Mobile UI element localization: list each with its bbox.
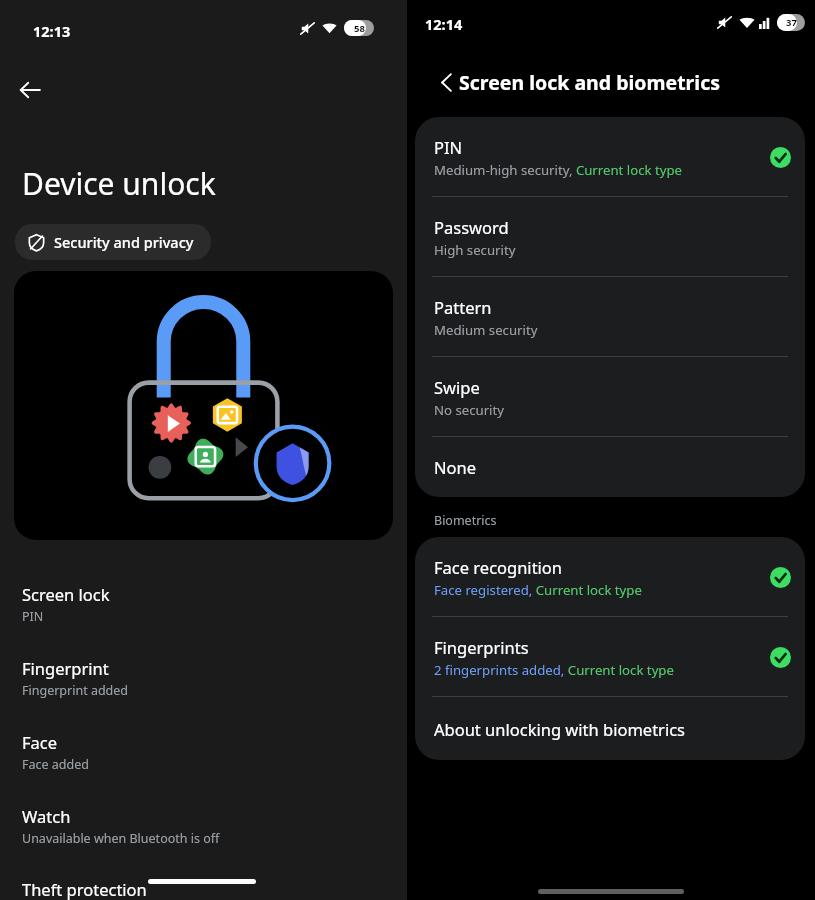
button[interactable]: About unlocking with biometrics — [415, 697, 805, 760]
button[interactable]: Face recognition — [415, 537, 805, 617]
button[interactable]: Fingerprints — [415, 617, 805, 697]
staticText: 58 — [354, 22, 365, 35]
staticText: Unavailable when Bluetooth is off — [22, 830, 220, 847]
button[interactable]: PIN — [415, 117, 805, 197]
staticText: 12:13 — [33, 21, 71, 41]
button[interactable]: Swipe — [415, 357, 805, 437]
staticText: Face — [22, 731, 58, 753]
staticText: PIN — [434, 136, 463, 158]
staticText: Fingerprints — [434, 636, 529, 658]
staticText: Biometrics — [434, 512, 497, 529]
staticText: 2 fingerprints added, Current lock type — [434, 661, 674, 679]
staticText: Fingerprint — [22, 657, 109, 679]
staticText: Fingerprint added — [22, 682, 129, 699]
button[interactable]: Fingerprint — [0, 652, 407, 705]
staticText: None — [434, 456, 477, 478]
staticText: Face recognition — [434, 556, 563, 578]
button[interactable]: Password — [415, 197, 805, 277]
staticText: No security — [434, 401, 504, 419]
button[interactable]: Security and privacy — [15, 224, 211, 260]
button[interactable]: Back — [8, 68, 52, 112]
staticText: Security and privacy — [54, 232, 194, 252]
staticText: Screen lock and biometrics — [459, 69, 720, 96]
staticText: Face registered, Current lock type — [434, 581, 642, 599]
button[interactable]: Theft protection — [0, 874, 407, 900]
button[interactable]: Screen lock — [0, 578, 407, 631]
button[interactable]: Back — [427, 62, 467, 102]
staticText: High security — [434, 241, 516, 259]
button[interactable]: Watch — [0, 800, 407, 853]
button[interactable] — [14, 271, 393, 540]
staticText: Swipe — [434, 376, 480, 398]
staticText: Theft protection — [22, 878, 147, 900]
staticText: 12:14 — [425, 14, 463, 34]
staticText: 37 — [786, 16, 797, 29]
staticText: Password — [434, 216, 509, 238]
button[interactable]: Face — [0, 726, 407, 779]
staticText: Device unlock — [22, 163, 216, 204]
staticText: PIN — [22, 608, 44, 625]
staticText: Pattern — [434, 296, 492, 318]
staticText: Screen lock — [22, 583, 110, 605]
staticText: Medium-high security, Current lock type — [434, 161, 682, 179]
button[interactable]: Pattern — [415, 277, 805, 357]
staticText: Medium security — [434, 321, 538, 339]
staticText: Watch — [22, 805, 71, 827]
staticText: About unlocking with biometrics — [434, 718, 686, 740]
button[interactable]: None — [415, 437, 805, 497]
staticText: Face added — [22, 756, 89, 773]
